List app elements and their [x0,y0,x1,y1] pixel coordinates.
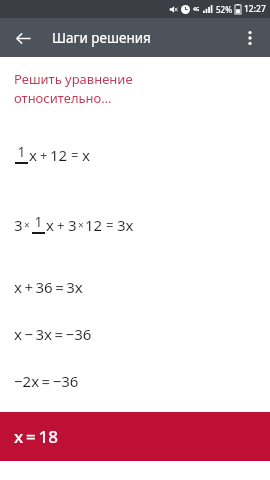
staticText: 4G [193,6,200,13]
staticText: x [46,215,54,235]
button[interactable]: Back [6,21,40,55]
staticText: × [24,218,30,232]
staticText: −2x = −36 [14,371,79,391]
staticText: = [106,216,114,234]
staticText: 1 [17,142,26,161]
staticText: 12 [85,215,103,235]
staticText: x − 3x = −36 [14,324,92,344]
staticText: x = 18 [14,425,59,448]
staticText: 1 [34,212,43,231]
staticText: x [82,145,90,165]
staticText: x [29,145,37,165]
staticText: x + 36 = 3x [14,277,83,297]
staticText: 3 [14,215,23,235]
staticText: 12 [50,145,68,165]
staticText: Решить уравнение относительно… [14,70,133,107]
staticText: + [40,146,48,164]
staticText: 3x [117,215,134,235]
staticText: 3 [68,215,77,235]
staticText: × [78,218,84,232]
staticText: 12:27 [244,3,266,15]
staticText: + [57,216,65,234]
staticText: Шаги решения [52,29,151,47]
staticText: = [71,146,79,164]
staticText: 52% [216,4,232,15]
button[interactable]: x = 18 [0,412,270,461]
button[interactable]: More options [233,21,267,55]
